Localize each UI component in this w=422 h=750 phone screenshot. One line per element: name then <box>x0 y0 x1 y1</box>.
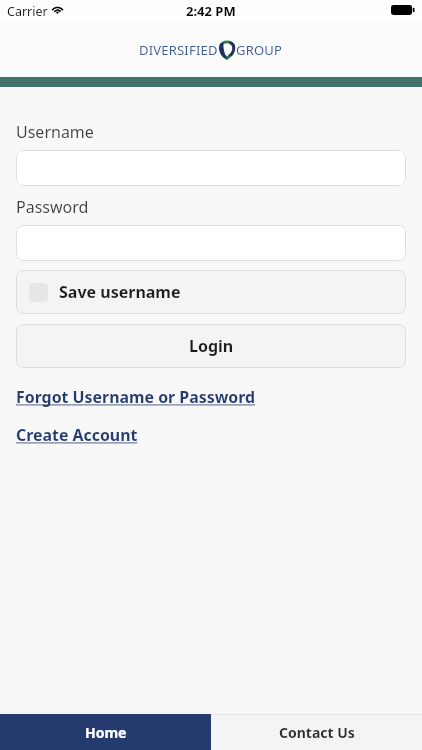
staticText: Create Account <box>16 424 138 446</box>
other: Battery full <box>391 5 415 16</box>
staticText: GROUP <box>236 41 283 59</box>
staticText: Carrier <box>7 3 48 20</box>
staticText: 2:42 PM <box>186 2 236 20</box>
button[interactable]: Login <box>16 324 406 368</box>
staticText: Contact Us <box>279 723 355 742</box>
staticText: Login <box>189 335 234 357</box>
staticText: Save username <box>59 281 181 303</box>
button[interactable]: Save username checkbox <box>16 270 406 314</box>
other: Wi-Fi signal <box>51 5 64 14</box>
button[interactable]: Create Account <box>16 424 138 446</box>
staticText: DIVERSIFIED <box>139 41 218 59</box>
button[interactable]: Contact Us <box>211 714 422 750</box>
staticText: Username <box>16 121 94 143</box>
staticText: Forgot Username or Password <box>16 386 256 408</box>
button[interactable]: Forgot Username or Password <box>16 386 256 408</box>
staticText: Password <box>16 196 89 218</box>
staticText: Home <box>85 723 127 742</box>
button[interactable]: Username input field <box>16 150 406 186</box>
button[interactable]: Password input field <box>16 225 406 261</box>
button[interactable]: Home <box>0 714 211 750</box>
